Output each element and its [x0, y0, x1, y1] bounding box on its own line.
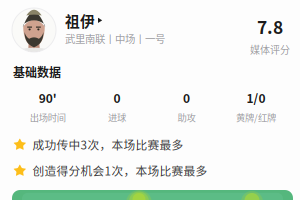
staticText: 媒体评分 [250, 42, 290, 57]
staticText: 基础数据 [13, 63, 61, 80]
staticText: 90' [39, 89, 57, 106]
button[interactable]: 祖伊 [0, 8, 300, 57]
staticText: 武里南联丨中场丨一号 [65, 31, 165, 46]
staticText: 助攻 [177, 110, 195, 124]
staticText: 祖伊 [65, 10, 95, 31]
staticText: 0 [183, 89, 190, 106]
staticText: 出场时间 [30, 110, 66, 124]
staticText: 创造得分机会1次，本场比赛最多 [33, 162, 208, 179]
staticText: 7.8 [257, 14, 283, 39]
staticText: 1/0 [246, 89, 265, 106]
staticText: 黄牌/红牌 [236, 110, 276, 124]
staticText: 成功传中3次，本场比赛最多 [33, 136, 184, 153]
staticText: 0 [114, 89, 121, 106]
staticText: 进球 [108, 110, 126, 124]
